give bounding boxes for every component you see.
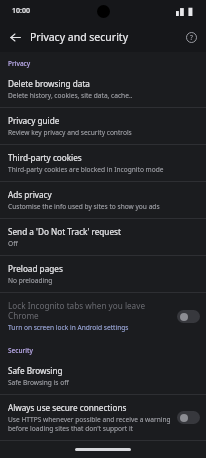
staticText: Safe Browsing bbox=[8, 365, 63, 376]
staticText: Always use secure connections bbox=[8, 402, 127, 413]
button[interactable]: Preload pages bbox=[0, 256, 206, 292]
button[interactable]: Delete browsing data bbox=[0, 71, 206, 107]
staticText: Customise the info used by sites to show… bbox=[8, 202, 160, 211]
staticText: Third-party cookies are blocked in Incog… bbox=[8, 165, 164, 174]
button[interactable]: Ads privacy bbox=[0, 182, 206, 218]
staticText: Lock Incognito tabs when you leave Chrom… bbox=[8, 300, 171, 321]
button[interactable]: Always use secure connections bbox=[0, 395, 206, 440]
staticText: Preload pages bbox=[8, 263, 63, 274]
staticText: Privacy guide bbox=[8, 115, 60, 126]
button[interactable]: Send a 'Do Not Track' request bbox=[0, 219, 206, 255]
button[interactable]: Lock Incognito tabs when you leave Chrom… bbox=[0, 293, 206, 339]
staticText: Turn on screen lock in Android settings bbox=[8, 323, 129, 332]
staticText: Privacy bbox=[8, 59, 31, 68]
button[interactable]: Privacy guide bbox=[0, 108, 206, 144]
staticText: Safe Browsing is off bbox=[8, 378, 69, 387]
button[interactable]: Safe Browsing bbox=[0, 358, 206, 394]
staticText: Third-party cookies bbox=[8, 152, 82, 163]
staticText: Delete browsing data bbox=[8, 78, 90, 89]
staticText: Send a 'Do Not Track' request bbox=[8, 226, 121, 237]
staticText: Delete history, cookies, site data, cach… bbox=[8, 91, 133, 100]
staticText: Privacy and security bbox=[30, 30, 181, 44]
staticText: No preloading bbox=[8, 276, 53, 285]
staticText: Security bbox=[8, 346, 33, 355]
staticText: Review key privacy and security controls bbox=[8, 128, 132, 137]
staticText: Off bbox=[8, 239, 18, 248]
button[interactable]: Back bbox=[4, 26, 26, 48]
button[interactable]: Help bbox=[181, 27, 201, 47]
staticText: Ads privacy bbox=[8, 189, 52, 200]
staticText: ? bbox=[190, 33, 193, 42]
staticText: Use HTTPS whenever possible and receive … bbox=[8, 415, 171, 433]
staticText: 10:00 bbox=[12, 6, 30, 16]
button[interactable]: Third-party cookies bbox=[0, 145, 206, 181]
